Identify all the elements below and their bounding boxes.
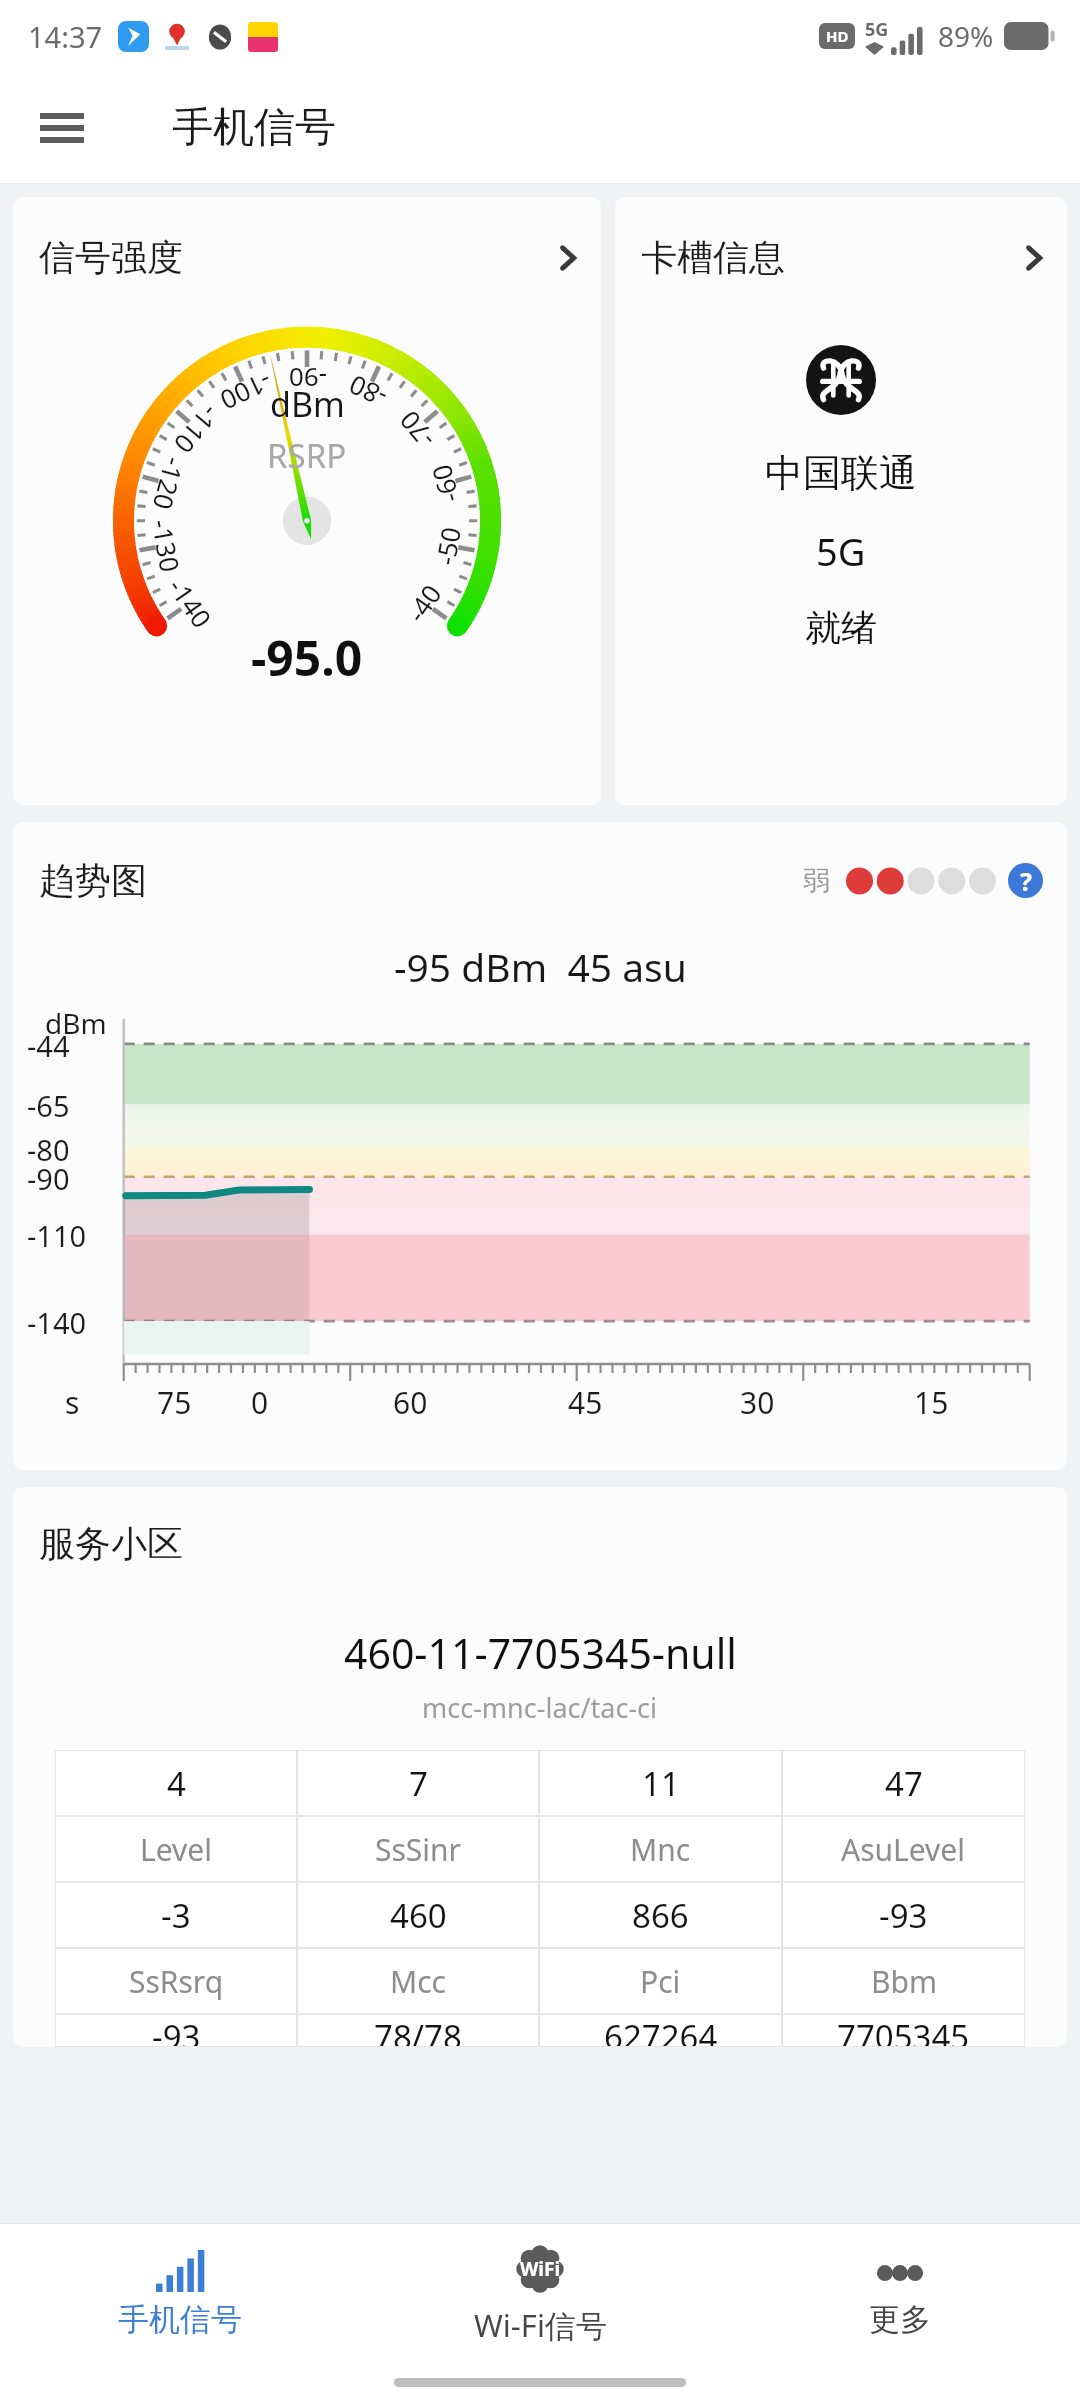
staticText: 30 [740, 1382, 775, 1423]
staticText: 手机信号 [172, 102, 336, 154]
staticText: ? [1020, 864, 1032, 898]
staticText: -93 [152, 2014, 201, 2047]
staticText: mcc-mnc-lac/tac-ci [422, 1689, 658, 1726]
staticText: -44 [27, 1026, 70, 1065]
staticText: -140 [27, 1303, 87, 1342]
staticText: 460-11-7705345-null [344, 1625, 737, 1681]
staticText: WiFi [520, 2256, 561, 2282]
staticText: 就绪 [805, 605, 877, 650]
staticText: -40 [398, 576, 449, 628]
staticText: Level [140, 1829, 212, 1870]
staticText: 47 [885, 1761, 923, 1806]
button[interactable]: Help [1008, 863, 1043, 898]
staticText: 460 [390, 1893, 447, 1938]
staticText: -70 [391, 403, 442, 456]
button[interactable]: 信号强度 [13, 197, 601, 805]
button[interactable]: 手机信号 [0, 2224, 360, 2364]
staticText: dBm [270, 381, 345, 427]
staticText: -3 [161, 1893, 191, 1938]
staticText: 78/78 [374, 2014, 462, 2047]
staticText: -100 [215, 364, 278, 418]
staticText: -90 [27, 1159, 70, 1198]
staticText: 5G [865, 17, 889, 42]
staticText: s [65, 1382, 80, 1423]
staticText: 7 [409, 1761, 428, 1806]
staticText: Mcc [390, 1961, 447, 2002]
staticText: 7705345 [837, 2014, 970, 2047]
staticText: 627264 [604, 2014, 718, 2047]
staticText: 信号强度 [39, 235, 183, 280]
staticText: Pci [640, 1961, 681, 2002]
staticText: -50 [427, 523, 468, 568]
staticText: 5G [816, 525, 866, 577]
staticText: SsSinr [375, 1829, 461, 1870]
staticText: 弱 [803, 864, 830, 898]
staticText: -60 [422, 460, 466, 507]
staticText: -110 [27, 1216, 87, 1255]
staticText: Bbm [871, 1961, 937, 2002]
staticText: 更多 [869, 2300, 931, 2339]
staticText: Wi-Fi信号 [474, 2304, 607, 2346]
staticText: 服务小区 [39, 1521, 183, 1566]
staticText: 趋势图 [39, 858, 147, 903]
staticText: -80 [27, 1130, 70, 1169]
staticText: 89% [938, 17, 994, 55]
staticText: -65 [27, 1086, 70, 1125]
staticText: -90 [288, 361, 327, 396]
button[interactable]: 卡槽信息 [615, 197, 1067, 805]
staticText: 中国联通 [765, 449, 917, 497]
staticText: 卡槽信息 [641, 235, 785, 280]
staticText: -140 [161, 571, 220, 634]
staticText: -95 dBm 45 asu [394, 940, 687, 993]
staticText: 14:37 [28, 17, 103, 56]
staticText: 866 [632, 1893, 689, 1938]
staticText: AsuLevel [841, 1829, 966, 1870]
staticText: 15 [914, 1382, 949, 1423]
staticText: 45 [568, 1382, 603, 1423]
staticText: SsRsrq [129, 1961, 224, 2002]
staticText: 0 [251, 1382, 269, 1423]
staticText: dBm [45, 1004, 107, 1042]
staticText: -93 [879, 1893, 928, 1938]
button[interactable]: Menu [32, 98, 92, 158]
staticText: -120 [146, 453, 193, 514]
staticText: 手机信号 [118, 2300, 242, 2339]
staticText: HD [826, 26, 849, 46]
staticText: 75 [157, 1382, 192, 1423]
staticText: 11 [642, 1761, 680, 1806]
staticText: -95.0 [251, 625, 363, 690]
staticText: 60 [393, 1382, 428, 1423]
staticText: 4 [167, 1761, 186, 1806]
staticText: Mnc [630, 1829, 691, 1870]
staticText: -130 [145, 516, 188, 575]
button[interactable]: WiFi [360, 2224, 720, 2364]
staticText: -110 [167, 398, 228, 461]
staticText: -80 [342, 367, 392, 416]
staticText: RSRP [267, 433, 347, 478]
button[interactable]: 更多 [720, 2224, 1080, 2364]
